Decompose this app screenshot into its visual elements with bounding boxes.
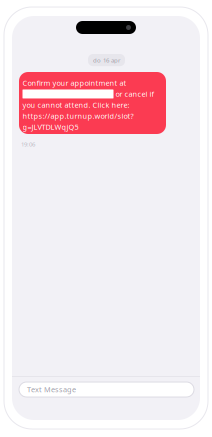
staticText: Confirm your appointment at	[22, 78, 126, 88]
staticText: Text Message	[27, 384, 76, 394]
staticText: g=JLVTDLWqjQ5	[22, 122, 78, 132]
staticText: or cancel if	[115, 89, 154, 99]
staticText: 19:06	[21, 140, 35, 148]
staticText: https://app.turnup.world/slot?	[22, 111, 133, 121]
staticText: you cannot attend. Click here:	[22, 100, 129, 110]
button[interactable]: Text Message	[19, 382, 194, 397]
staticText: do 16 apr	[93, 56, 120, 64]
